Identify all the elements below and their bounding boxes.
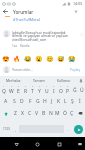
- staticText: ?123: [3, 127, 10, 131]
- button[interactable]: 2: [8, 85, 15, 95]
- button[interactable]: H: [41, 96, 48, 106]
- button[interactable]: 5: [29, 85, 36, 95]
- staticText: 14:05: [73, 1, 83, 6]
- staticText: M: [55, 110, 60, 117]
- button[interactable]: Back: [11, 139, 21, 149]
- button[interactable]: 4: [22, 85, 29, 95]
- staticText: I: [53, 88, 55, 95]
- staticText: Tamam: [33, 78, 45, 83]
- button[interactable]: G: [34, 96, 41, 106]
- button[interactable]: 7: [43, 85, 50, 95]
- staticText: Q: [2, 88, 6, 95]
- staticText: Yorumlar: [13, 9, 34, 15]
- staticText: Ö: [63, 110, 67, 117]
- staticText: 4: [25, 85, 27, 88]
- staticText: 😍: [2, 55, 10, 62]
- button[interactable]: 😊: [44, 53, 55, 64]
- button[interactable]: Backspace: [75, 108, 85, 119]
- staticText: N: [49, 110, 53, 117]
- staticText: Ü: [80, 87, 84, 94]
- button[interactable]: 😭: [66, 53, 77, 64]
- button[interactable]: V: [33, 108, 40, 119]
- button[interactable]: Paylaş: [69, 65, 82, 74]
- staticText: 😂: [24, 55, 32, 62]
- staticText: 0: [67, 85, 69, 88]
- staticText: 3: [18, 85, 20, 88]
- staticText: 1sa: [12, 44, 17, 48]
- button[interactable]: 😅: [55, 53, 66, 64]
- button[interactable]: ?123: [0, 123, 13, 135]
- button[interactable]: 8: [50, 85, 57, 95]
- button[interactable]: Home: [32, 139, 42, 149]
- button[interactable]: J: [48, 96, 55, 106]
- button[interactable]: #TrueFullMetal: [13, 17, 40, 22]
- button[interactable]: Kullanıcı: [51, 76, 76, 85]
- staticText: B: [42, 110, 46, 117]
- button[interactable]: Hide keyboard: [76, 140, 84, 148]
- button[interactable]: 9: [57, 85, 64, 95]
- staticText: S: [13, 98, 16, 105]
- button[interactable]: B: [40, 108, 47, 119]
- button[interactable]: S: [10, 96, 18, 106]
- staticText: D: [20, 98, 24, 105]
- staticText: 😅: [57, 55, 65, 62]
- button[interactable]: Ö: [61, 108, 68, 119]
- staticText: 😮: [35, 55, 43, 62]
- button[interactable]: A: [2, 96, 10, 106]
- button[interactable]: 😂: [22, 53, 33, 64]
- button[interactable]: Filter: [71, 7, 80, 16]
- button[interactable]: Send: [71, 123, 85, 135]
- button[interactable]: Ü: [78, 85, 85, 95]
- staticText: Merhaba: [6, 78, 21, 83]
- staticText: .: [67, 127, 69, 132]
- button[interactable]: Z: [11, 108, 19, 119]
- button[interactable]: F: [26, 96, 34, 106]
- staticText: P: [66, 88, 70, 95]
- button[interactable]: Merhaba: [0, 76, 26, 85]
- staticText: F: [29, 98, 32, 105]
- staticText: J: [51, 98, 53, 105]
- button[interactable]: X: [19, 108, 26, 119]
- staticText: #TrueFullMetal: [13, 17, 40, 22]
- staticText: V: [35, 110, 39, 117]
- button[interactable]: Tamam: [26, 76, 51, 85]
- button[interactable]: Recents: [54, 139, 64, 149]
- staticText: T: [31, 88, 34, 95]
- button[interactable]: 0: [64, 85, 71, 95]
- button[interactable]: İ: [76, 96, 83, 106]
- staticText: Jahtudle Bonuchuci mudi kajandak dilmlik…: [12, 30, 72, 42]
- button[interactable]: N: [47, 108, 54, 119]
- button[interactable]: 1: [0, 85, 8, 95]
- staticText: Yorum ekle...: [12, 67, 33, 72]
- staticText: Z: [14, 110, 17, 117]
- button[interactable]: L: [62, 96, 69, 106]
- button[interactable]: ,: [13, 123, 19, 135]
- button[interactable]: 3: [15, 85, 22, 95]
- button[interactable]: 🔥: [11, 53, 22, 64]
- button[interactable]: Voice input: [76, 76, 85, 85]
- staticText: O: [59, 88, 63, 95]
- button[interactable]: 6: [36, 85, 43, 95]
- staticText: Ğ: [73, 87, 77, 94]
- button[interactable]: Ğ: [71, 85, 78, 95]
- staticText: İ: [79, 98, 81, 105]
- staticText: Y: [38, 88, 41, 95]
- button[interactable]: M: [54, 108, 61, 119]
- button[interactable]: 😍: [0, 53, 11, 64]
- button[interactable]: K: [55, 96, 62, 106]
- staticText: 1: [3, 85, 5, 88]
- button[interactable]: Back: [1, 7, 10, 16]
- button[interactable]: Ş: [69, 96, 76, 106]
- staticText: H: [43, 98, 47, 105]
- staticText: 2: [11, 85, 13, 88]
- button[interactable]: Shift: [0, 108, 11, 119]
- staticText: C: [28, 110, 32, 117]
- button[interactable]: C: [26, 108, 33, 119]
- button[interactable]: 😮: [33, 53, 44, 64]
- staticText: Kullanıcı: [57, 78, 71, 83]
- button[interactable]: Like: [79, 32, 84, 37]
- button[interactable]: D: [18, 96, 26, 106]
- button[interactable]: Ç: [68, 108, 75, 119]
